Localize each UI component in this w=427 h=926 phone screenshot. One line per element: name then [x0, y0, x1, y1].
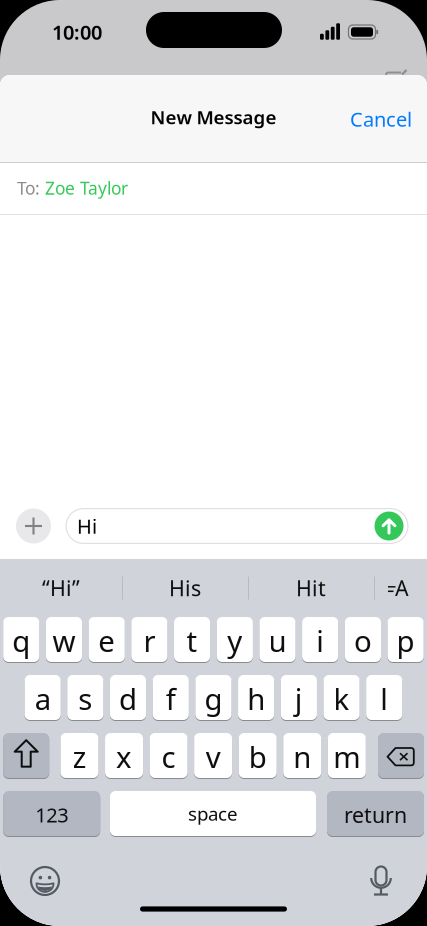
button[interactable]: To: — [17, 162, 427, 214]
staticText: Hi — [77, 513, 97, 539]
staticText: Hit — [296, 574, 326, 602]
staticText: s — [78, 679, 92, 718]
staticText: Zoe Taylor — [45, 176, 128, 199]
button[interactable]: His — [123, 565, 247, 611]
button[interactable]: h — [238, 674, 274, 721]
button[interactable]: z — [60, 732, 98, 779]
button[interactable]: g — [195, 674, 232, 721]
staticText: d — [119, 679, 137, 718]
button[interactable]: space — [110, 790, 316, 837]
staticText: 123 — [35, 801, 68, 828]
button[interactable]: A — [388, 577, 410, 599]
staticText: r — [143, 621, 155, 660]
staticText: p — [397, 621, 415, 660]
staticText: m — [333, 737, 360, 776]
button[interactable] — [23, 859, 67, 903]
button[interactable]: o — [345, 616, 381, 663]
staticText: x — [116, 737, 132, 776]
button[interactable]: e — [89, 616, 125, 663]
staticText: t — [187, 621, 198, 660]
staticText: e — [98, 621, 115, 660]
button[interactable]: w — [46, 616, 82, 663]
button[interactable] — [359, 859, 403, 903]
button[interactable]: i — [302, 616, 338, 663]
button[interactable]: Hi — [65, 508, 408, 544]
staticText: l — [380, 679, 388, 718]
staticText: a — [35, 679, 51, 718]
button[interactable]: u — [259, 616, 296, 663]
button[interactable]: “Hi” — [0, 565, 122, 611]
button[interactable]: return — [327, 790, 424, 837]
button[interactable]: Hit — [249, 565, 373, 611]
staticText: g — [204, 679, 222, 718]
staticText: 10:00 — [52, 19, 102, 45]
button[interactable] — [16, 508, 51, 543]
staticText: o — [354, 621, 372, 660]
button[interactable]: m — [328, 732, 366, 779]
staticText: v — [206, 737, 221, 776]
button[interactable]: x — [105, 732, 143, 779]
button[interactable] — [378, 732, 424, 779]
staticText: u — [268, 621, 286, 660]
staticText: “Hi” — [42, 574, 80, 602]
staticText: i — [316, 621, 324, 660]
staticText: A — [395, 574, 409, 602]
button[interactable]: l — [366, 674, 402, 721]
button[interactable]: d — [110, 674, 146, 721]
button[interactable]: c — [150, 732, 188, 779]
button[interactable]: k — [323, 674, 360, 721]
button[interactable]: Cancel — [350, 106, 412, 132]
button[interactable]: t — [174, 616, 210, 663]
button[interactable] — [3, 732, 49, 779]
button[interactable] — [374, 511, 403, 540]
button[interactable]: b — [239, 732, 277, 779]
button[interactable]: j — [281, 674, 317, 721]
staticText: y — [227, 621, 242, 660]
button[interactable]: p — [387, 616, 424, 663]
staticText: return — [344, 800, 407, 829]
button[interactable]: s — [67, 674, 103, 721]
staticText: k — [334, 679, 350, 718]
staticText: Cancel — [350, 106, 412, 132]
button[interactable]: r — [131, 616, 167, 663]
staticText: c — [162, 737, 176, 776]
staticText: n — [293, 737, 311, 776]
button[interactable]: 123 — [3, 790, 100, 837]
staticText: h — [247, 679, 265, 718]
staticText: His — [169, 574, 201, 602]
staticText: b — [249, 737, 267, 776]
button[interactable]: v — [194, 732, 232, 779]
staticText: f — [166, 679, 176, 718]
staticText: q — [12, 621, 30, 660]
button[interactable]: a — [25, 674, 61, 721]
staticText: New Message — [150, 105, 276, 129]
button[interactable]: f — [153, 674, 189, 721]
staticText: To: — [17, 176, 40, 199]
staticText: space — [188, 801, 238, 826]
button[interactable]: q — [3, 616, 39, 663]
staticText: w — [52, 621, 75, 660]
button[interactable]: n — [283, 732, 321, 779]
staticText: j — [295, 679, 303, 718]
button[interactable]: y — [217, 616, 253, 663]
staticText: z — [72, 737, 86, 776]
